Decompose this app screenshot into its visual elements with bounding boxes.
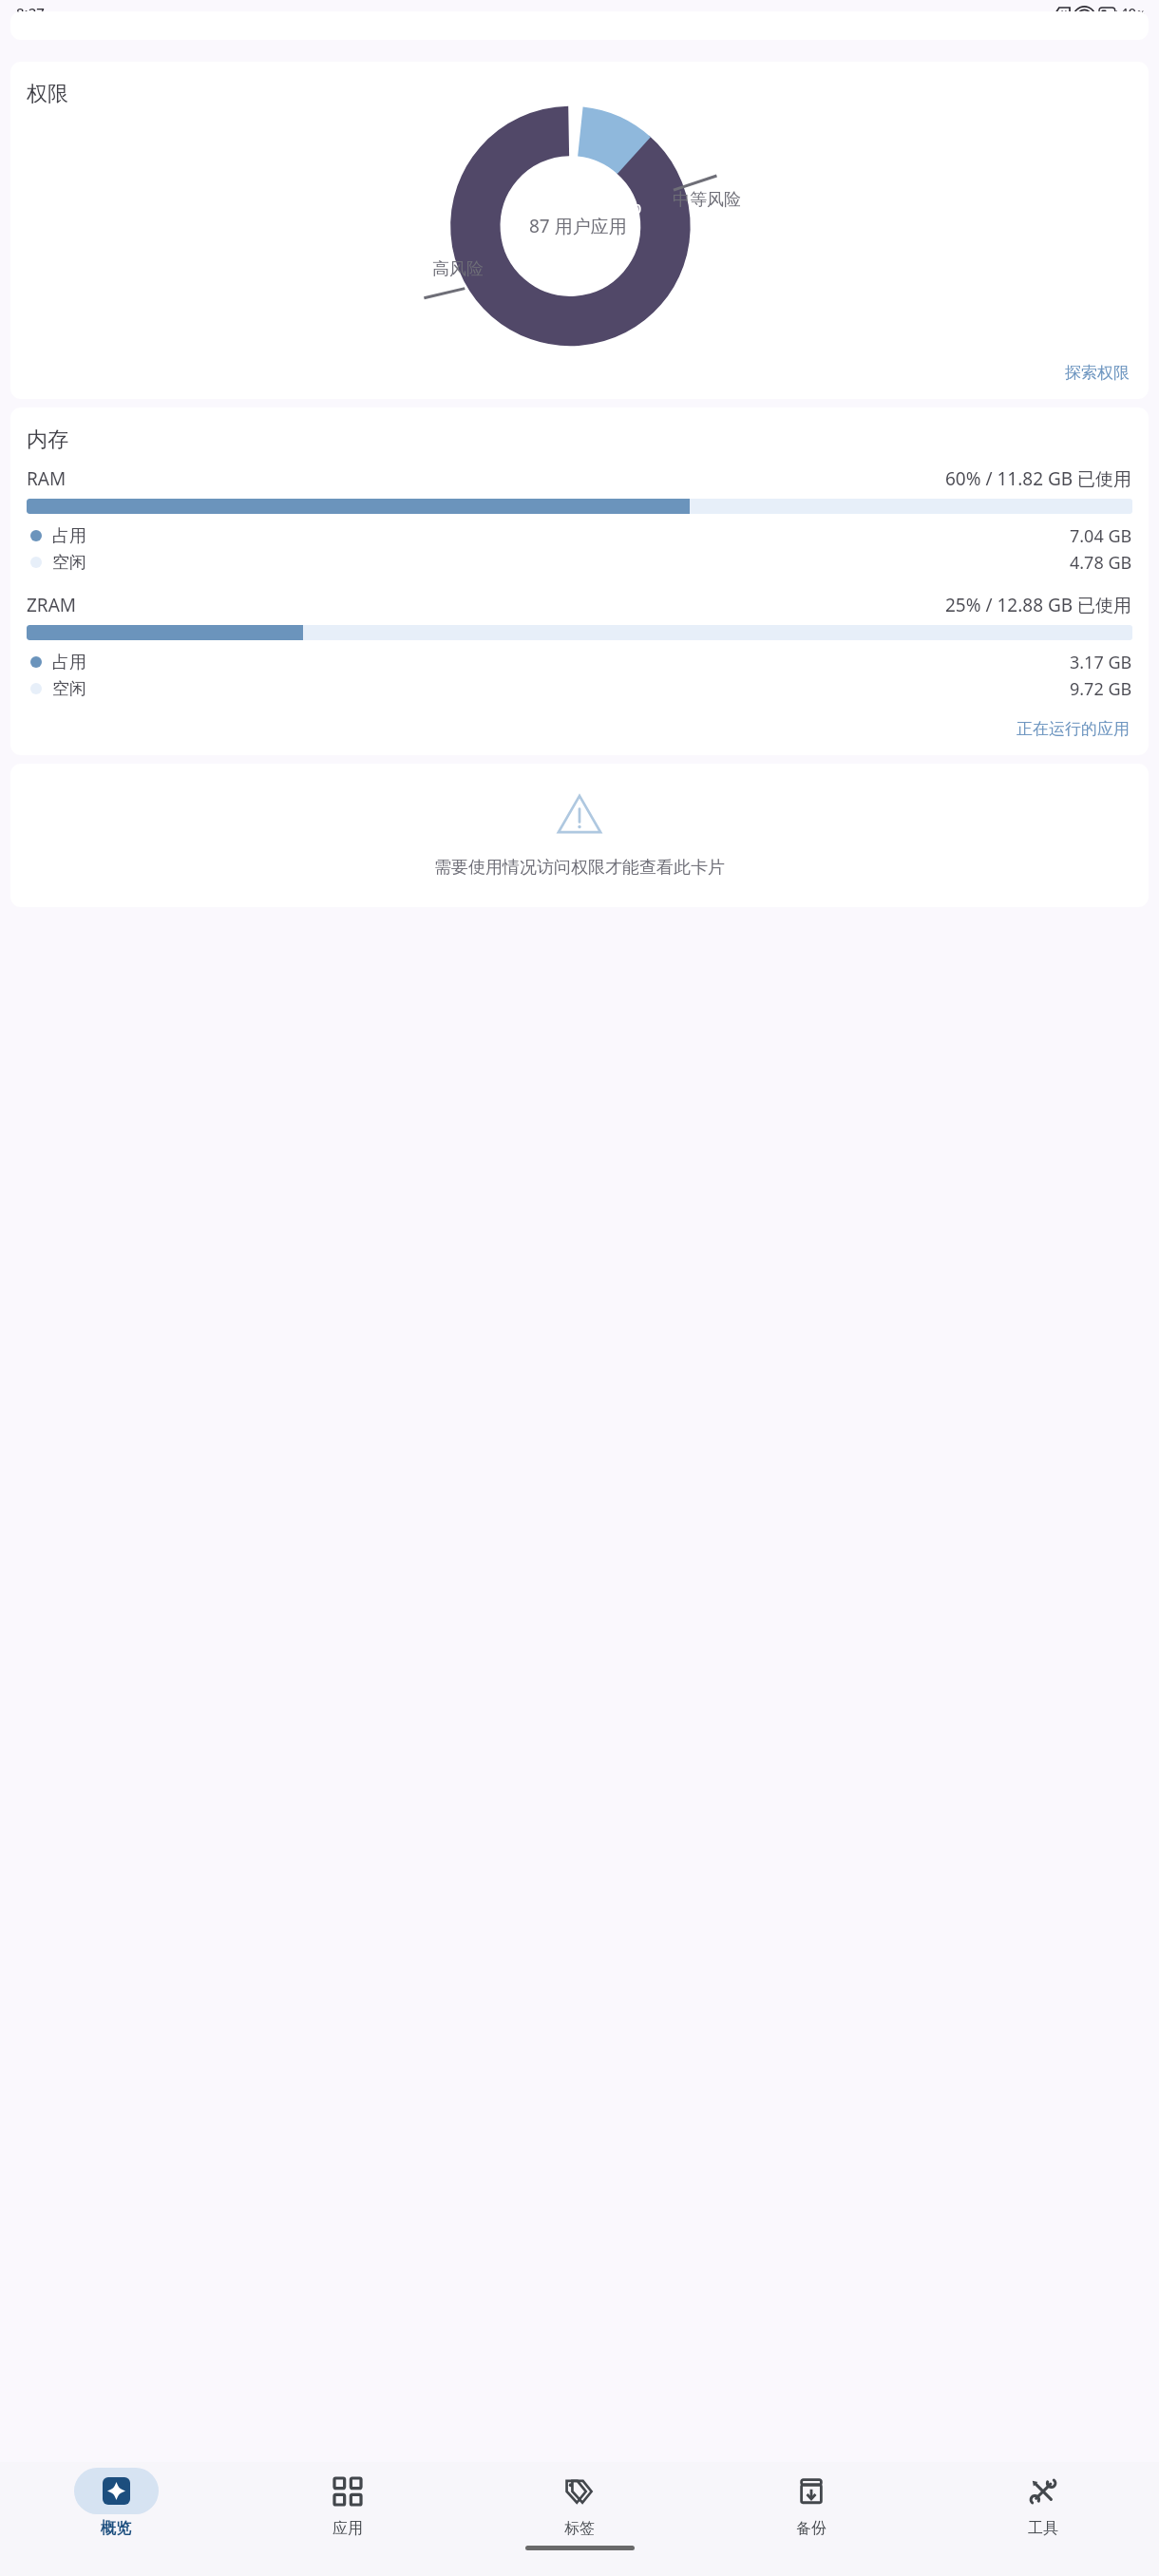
staticText: 9.72 GB <box>1070 677 1132 701</box>
staticText: 正在运行的应用 <box>1016 719 1130 739</box>
button[interactable]: 概览 <box>0 2462 232 2546</box>
staticText: 60% / 11.82 GB 已使用 <box>945 466 1132 491</box>
staticText: 空闲 <box>52 678 86 700</box>
staticText: 占用 <box>52 652 86 673</box>
staticText: 高风险 <box>432 258 484 280</box>
staticText: 占用 <box>52 525 86 547</box>
staticText: 3.17 GB <box>1070 651 1132 674</box>
staticText: 8:27 <box>16 3 45 22</box>
staticText: RAM <box>27 466 66 491</box>
button[interactable]: 正在运行的应用 <box>997 710 1149 748</box>
staticText: 4.78 GB <box>1070 551 1132 575</box>
button[interactable]: 内存 <box>10 407 1149 755</box>
button[interactable]: 探索权限 <box>1046 354 1149 391</box>
button[interactable]: 备份 <box>695 2462 927 2546</box>
staticText: 应用 <box>332 2519 363 2538</box>
staticText: 工具 <box>1028 2519 1058 2538</box>
staticText: 需要使用情况访问权限才能查看此卡片 <box>26 857 1133 879</box>
staticText: 探索权限 <box>1065 363 1130 383</box>
staticText: 内存 <box>27 426 68 453</box>
staticText: 10 <box>625 199 642 218</box>
staticText: 40 <box>1120 3 1137 22</box>
staticText: 中等风险 <box>673 189 741 211</box>
staticText: 25% / 12.88 GB 已使用 <box>945 593 1132 617</box>
button[interactable]: 权限 <box>10 62 1149 399</box>
button[interactable]: 标签 <box>464 2462 695 2546</box>
staticText: 空闲 <box>52 552 86 574</box>
button[interactable]: 工具 <box>927 2462 1159 2546</box>
staticText: ZRAM <box>27 593 77 617</box>
staticText: 备份 <box>796 2519 826 2538</box>
staticText: 权限 <box>27 81 68 107</box>
staticText: 标签 <box>564 2519 595 2538</box>
staticText: 7.04 GB <box>1070 524 1132 548</box>
staticText: % <box>1137 8 1146 21</box>
staticText: 概览 <box>101 2519 131 2538</box>
button[interactable]: 需要使用情况访问权限才能查看此卡片 <box>10 764 1149 907</box>
staticText: 77 <box>514 251 531 270</box>
staticText: 87 用户应用 <box>529 214 627 238</box>
button[interactable]: 应用 <box>232 2462 464 2546</box>
